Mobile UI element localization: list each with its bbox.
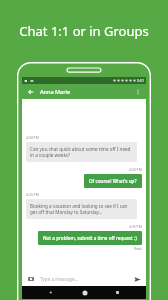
button[interactable]: Booking a vacation and looking to see if… bbox=[26, 199, 137, 219]
staticText: Of course! What's up? bbox=[89, 178, 137, 184]
staticText: 4:34 PM bbox=[129, 167, 142, 172]
button[interactable]: Recent apps bbox=[112, 287, 123, 298]
button[interactable]: Home bbox=[79, 287, 90, 298]
button[interactable]: More options bbox=[133, 87, 142, 96]
staticText: Read bbox=[134, 247, 142, 251]
button[interactable]: Of course! What's up? bbox=[84, 174, 142, 188]
staticText: 3:51 bbox=[137, 78, 144, 83]
button[interactable]: Not a problem, submit a time off request… bbox=[38, 231, 142, 245]
button[interactable]: Send bbox=[132, 274, 142, 284]
staticText: 4:34 PM bbox=[26, 135, 39, 140]
staticText: Not a problem, submit a time off request… bbox=[43, 235, 137, 241]
staticText: Anna Marie bbox=[40, 88, 71, 95]
button[interactable]: Camera bbox=[26, 274, 35, 283]
staticText: Chat 1:1 or in Groups bbox=[19, 22, 149, 40]
button[interactable]: Can you chat quick about some time off I… bbox=[26, 142, 137, 162]
staticText: Type a message... bbox=[40, 276, 79, 282]
staticText: Can you chat quick about some time off I… bbox=[30, 146, 133, 158]
staticText: Booking a vacation and looking to see if… bbox=[30, 203, 133, 215]
staticText: 4:33 PM bbox=[26, 192, 39, 197]
button[interactable]: Back bbox=[45, 287, 56, 298]
staticText: 4:35 PM bbox=[129, 224, 142, 229]
button[interactable]: Back bbox=[26, 87, 35, 96]
